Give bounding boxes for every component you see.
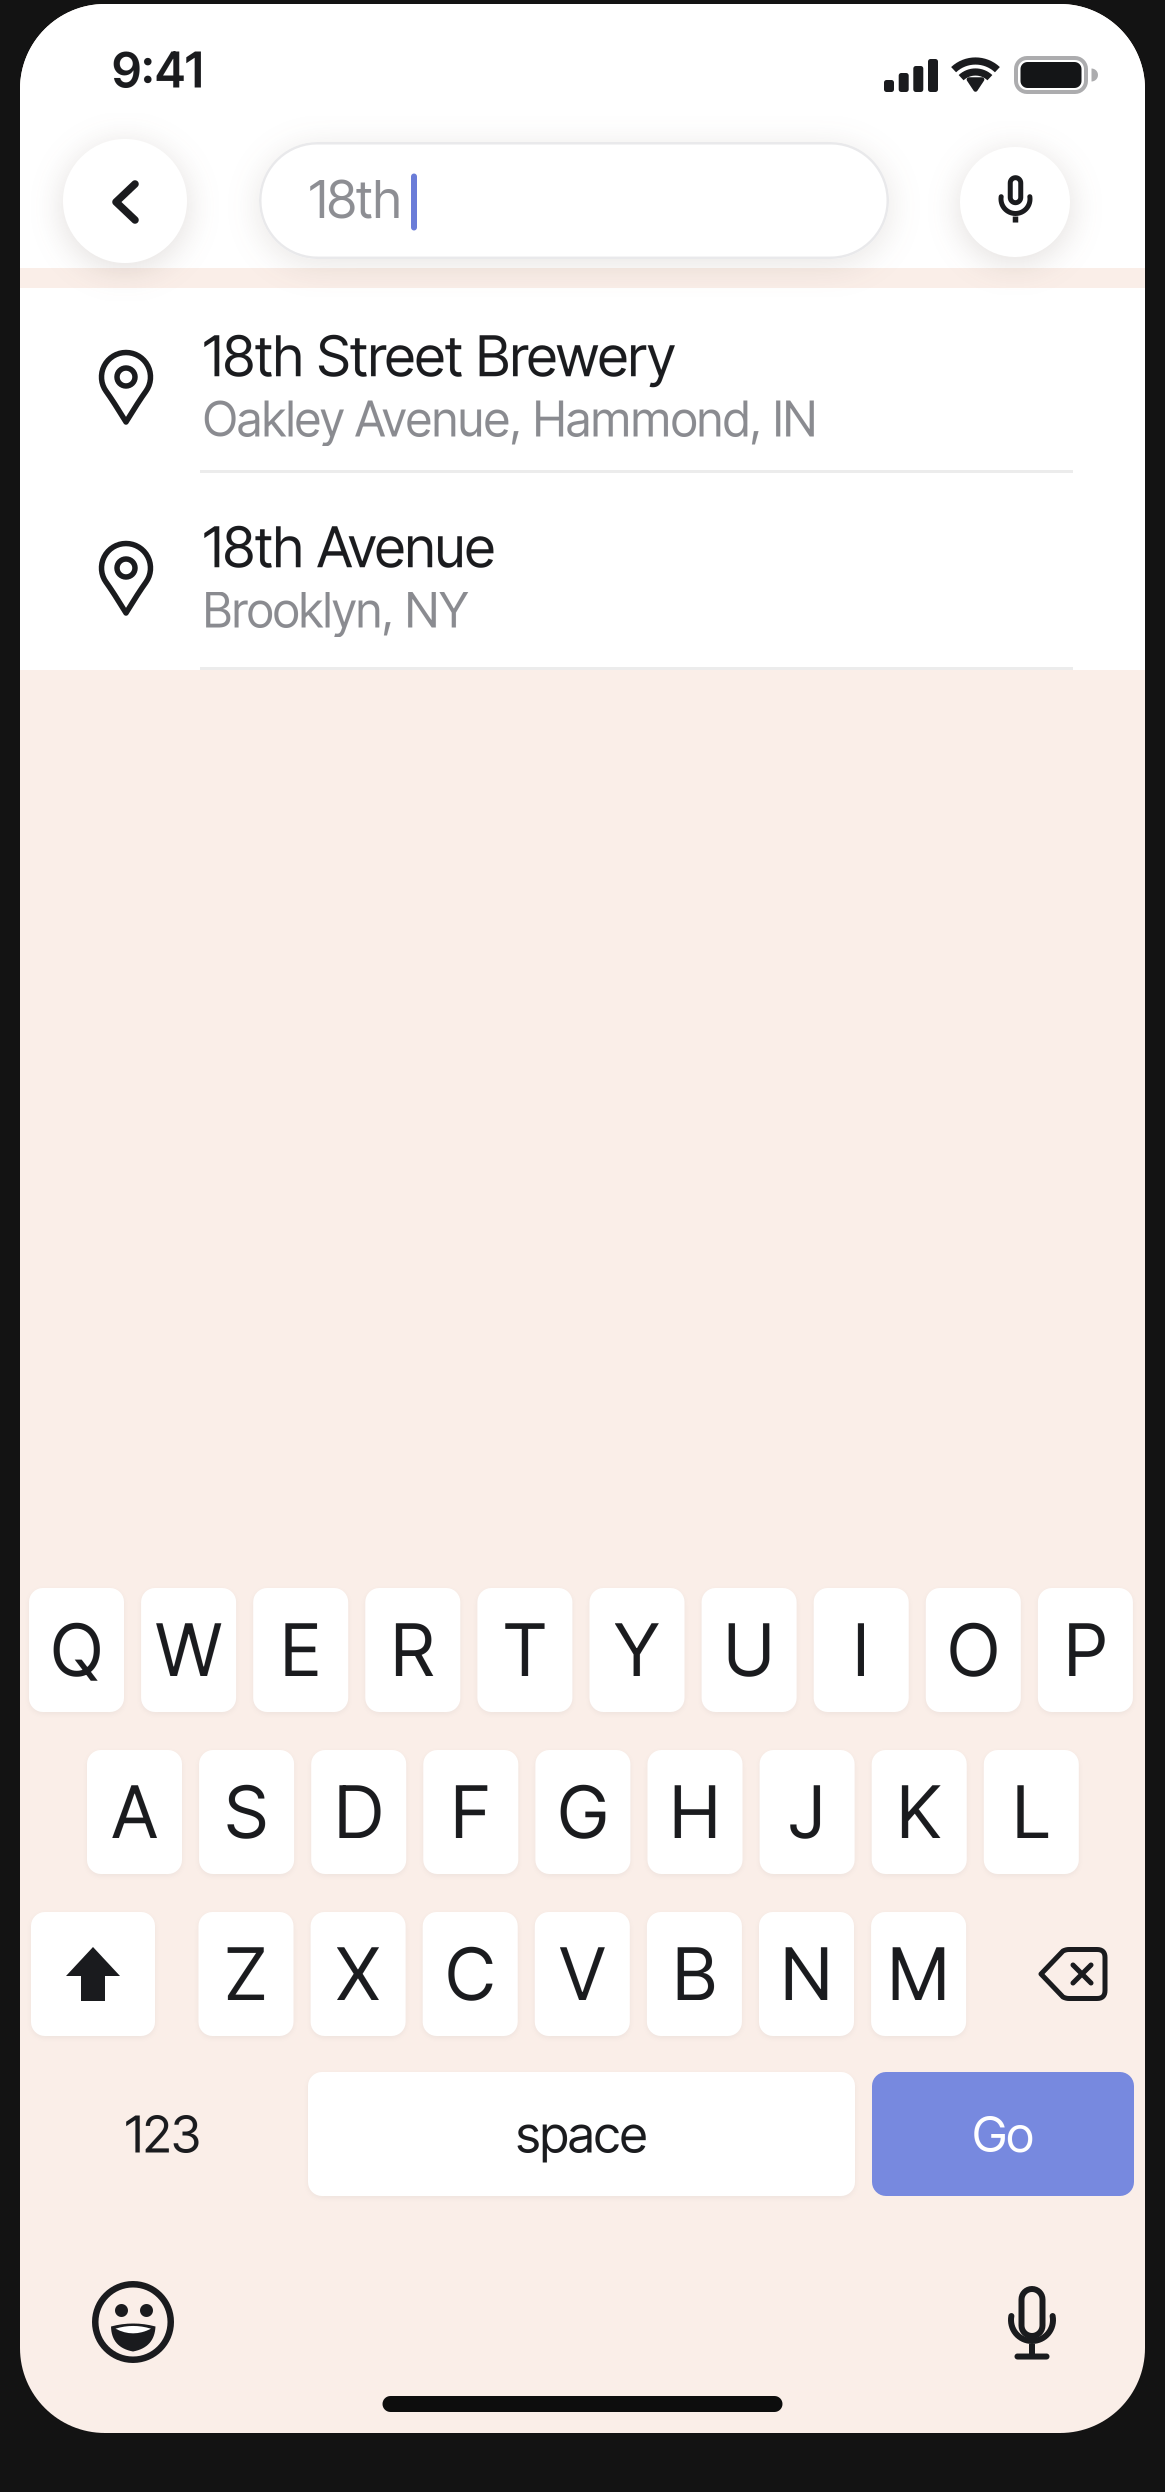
staticText: 18th Street Brewery [203, 322, 676, 390]
button[interactable]: E [253, 1588, 348, 1712]
button[interactable]: Q [29, 1588, 124, 1712]
staticText: 18th Avenue [203, 513, 495, 581]
button[interactable]: Z [198, 1912, 293, 2036]
button[interactable]: O [926, 1588, 1021, 1712]
staticText: D [335, 1768, 383, 1855]
button[interactable] [63, 139, 187, 263]
staticText: U [724, 1606, 774, 1693]
button[interactable]: 18th [259, 142, 889, 259]
staticText: Z [225, 1930, 267, 2017]
button[interactable]: A [87, 1750, 182, 1874]
button[interactable]: 18th Street Brewery [20, 288, 1145, 471]
button[interactable]: N [759, 1912, 854, 2036]
button[interactable]: R [365, 1588, 460, 1712]
staticText: 9:41 [112, 41, 203, 99]
staticText: T [503, 1606, 546, 1693]
button[interactable]: C [423, 1912, 518, 2036]
button[interactable]: G [535, 1750, 630, 1874]
staticText: Brooklyn, NY [203, 581, 469, 639]
button[interactable]: space [308, 2072, 855, 2196]
staticText: space [516, 2103, 647, 2165]
staticText: Oakley Avenue, Hammond, IN [203, 390, 817, 448]
staticText: H [670, 1768, 720, 1855]
button[interactable]: X [311, 1912, 406, 2036]
button[interactable]: U [702, 1588, 797, 1712]
staticText: L [1013, 1768, 1050, 1855]
button[interactable]: H [647, 1750, 742, 1874]
button[interactable]: I [814, 1588, 909, 1712]
button[interactable]: Y [589, 1588, 684, 1712]
button[interactable]: W [141, 1588, 236, 1712]
button[interactable] [1038, 1947, 1108, 2001]
button[interactable]: P [1038, 1588, 1133, 1712]
button[interactable]: 18th Avenue [20, 473, 1145, 667]
staticText: G [558, 1768, 608, 1855]
staticText: K [897, 1768, 941, 1855]
staticText: Go [972, 2104, 1033, 2164]
staticText: Y [614, 1606, 659, 1693]
staticText: A [112, 1768, 157, 1855]
button[interactable] [31, 1912, 155, 2036]
button[interactable] [960, 147, 1070, 257]
staticText: Q [51, 1606, 102, 1693]
button[interactable]: D [311, 1750, 406, 1874]
staticText: N [781, 1930, 832, 2017]
button[interactable] [91, 2280, 175, 2364]
button[interactable]: F [423, 1750, 518, 1874]
staticText: S [225, 1768, 268, 1855]
button[interactable]: V [535, 1912, 630, 2036]
staticText: P [1064, 1606, 1106, 1693]
button[interactable]: T [477, 1588, 572, 1712]
staticText: J [789, 1768, 825, 1855]
button[interactable]: Go [872, 2072, 1134, 2196]
button[interactable]: L [984, 1750, 1079, 1874]
staticText: O [948, 1606, 999, 1693]
staticText: W [156, 1606, 221, 1693]
staticText: R [391, 1606, 434, 1693]
button[interactable] [1000, 2286, 1064, 2362]
button[interactable]: B [647, 1912, 742, 2036]
staticText: F [451, 1768, 490, 1855]
staticText: I [853, 1606, 869, 1693]
button[interactable]: 123 [68, 2072, 258, 2196]
button[interactable]: M [871, 1912, 966, 2036]
button[interactable]: K [872, 1750, 967, 1874]
button[interactable]: J [760, 1750, 855, 1874]
staticText: 18th [309, 167, 401, 230]
staticText: B [673, 1930, 716, 2017]
staticText: V [560, 1930, 605, 2017]
staticText: X [337, 1930, 380, 2017]
staticText: C [446, 1930, 495, 2017]
staticText: 123 [125, 2103, 201, 2165]
button[interactable]: S [199, 1750, 294, 1874]
staticText: M [888, 1930, 949, 2017]
staticText: E [281, 1606, 321, 1693]
